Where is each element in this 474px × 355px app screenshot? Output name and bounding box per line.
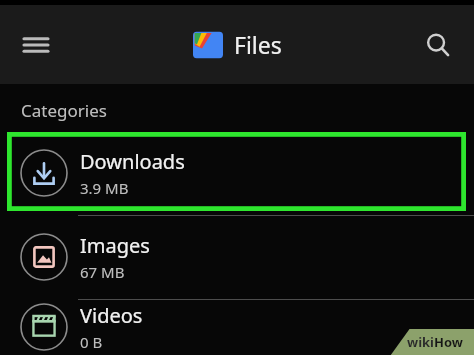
staticText: 0 B: [80, 332, 103, 352]
staticText: Downloads: [80, 148, 185, 175]
staticText: Files: [234, 29, 282, 60]
staticText: 67 MB: [80, 262, 125, 282]
button[interactable]: Downloads: [0, 131, 474, 215]
button[interactable]: Images: [0, 215, 474, 299]
staticText: Videos: [80, 302, 143, 329]
button[interactable]: Videos: [0, 299, 474, 355]
staticText: wiki: [407, 333, 434, 351]
staticText: How: [434, 333, 463, 351]
staticText: Images: [80, 232, 150, 259]
button[interactable]: Search: [414, 21, 462, 69]
staticText: 3.9 MB: [80, 178, 129, 198]
button[interactable]: Open navigation menu: [12, 21, 60, 69]
button[interactable]: Files: [193, 29, 282, 60]
staticText: Categories: [21, 99, 107, 122]
